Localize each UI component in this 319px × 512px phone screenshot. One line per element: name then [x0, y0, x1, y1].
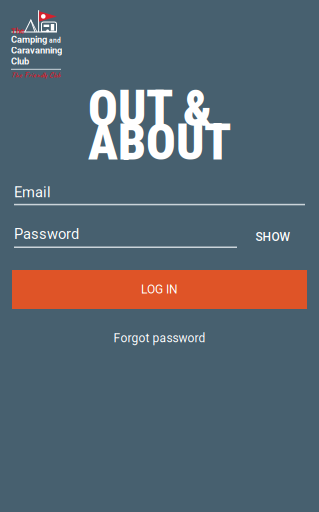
- staticText: Forgot password: [113, 331, 205, 345]
- staticText: ABOUT: [88, 114, 231, 172]
- staticText: Caravanning: [11, 45, 62, 56]
- staticText: LOG IN: [141, 282, 178, 297]
- staticText: Password: [14, 225, 79, 242]
- button[interactable]: Forgot password: [0, 331, 319, 345]
- staticText: Club: [11, 56, 29, 67]
- staticText: Camping: [11, 34, 47, 45]
- staticText: Email: [14, 184, 51, 201]
- staticText: and: [49, 36, 61, 44]
- staticText: The Friendly Club: [11, 70, 61, 80]
- staticText: SHOW: [255, 230, 290, 244]
- staticText: OUT &: [88, 80, 212, 138]
- staticText: The: [11, 26, 24, 35]
- button[interactable]: SHOW: [241, 226, 305, 248]
- button[interactable]: LOG IN: [12, 270, 307, 309]
